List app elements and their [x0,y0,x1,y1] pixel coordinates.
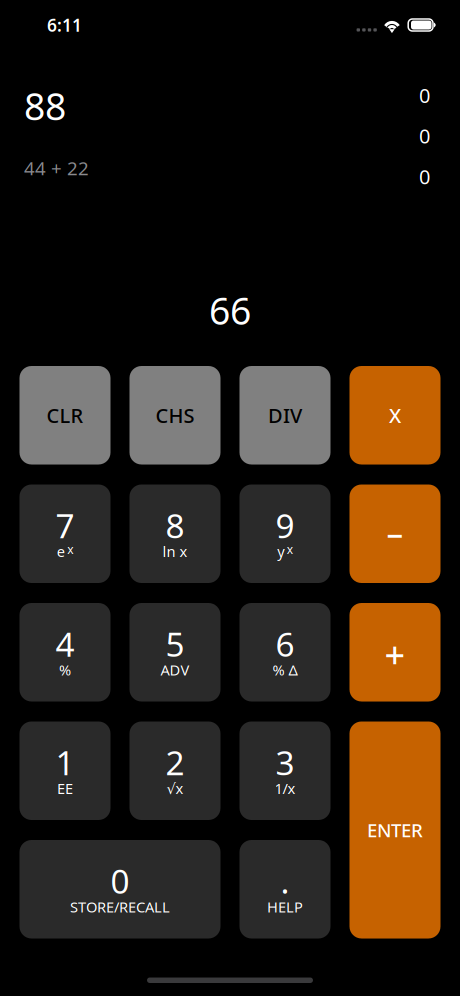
staticText: HELP [267,897,303,916]
button[interactable]: 2 [129,721,220,820]
staticText: √x [166,778,183,798]
staticText: ln x [162,541,187,561]
staticText: X [389,402,401,429]
staticText: + [384,630,405,678]
staticText: % Δ [272,660,297,679]
staticText: 88 [24,81,66,131]
staticText: 5 [165,622,184,666]
staticText: – [386,510,403,554]
staticText: . [280,859,289,903]
staticText: x [67,541,73,557]
staticText: e [57,541,65,561]
staticText: 0 [419,123,430,149]
staticText: 6:11 [47,13,82,36]
staticText: DIV [268,402,302,429]
button[interactable]: – [349,484,440,583]
button[interactable]: 4 [19,603,110,701]
button[interactable]: X [349,366,440,464]
button[interactable]: 3 [239,721,330,820]
staticText: ENTER [367,818,423,842]
staticText: 7 [55,503,74,547]
staticText: 8 [165,503,184,547]
button[interactable]: 6 [239,603,330,701]
staticText: 3 [275,740,294,784]
staticText: ADV [160,660,189,679]
button[interactable]: 7 [19,484,110,583]
button[interactable]: DIV [239,366,330,464]
button[interactable]: CLR [19,366,110,464]
staticText: 0 [419,163,430,190]
staticText: 44 + 22 [24,156,89,180]
staticText: STORE/RECALL [70,897,170,916]
staticText: 0 [419,82,430,109]
staticText: % [59,660,71,679]
button[interactable]: CHS [129,366,220,464]
staticText: CLR [46,402,83,429]
staticText: x [287,541,293,557]
staticText: CHS [155,402,194,429]
staticText: 66 [209,285,251,335]
staticText: 9 [275,503,294,547]
staticText: 6 [275,622,294,666]
button[interactable]: . [239,840,330,938]
staticText: EE [57,778,73,798]
staticText: 1 [55,740,74,784]
button[interactable]: + [349,603,440,701]
button[interactable]: 1 [19,721,110,820]
staticText: y [277,541,284,561]
staticText: 2 [165,740,184,784]
staticText: 0 [110,859,129,903]
staticText: 4 [55,622,74,666]
staticText: 1/x [274,778,295,798]
button[interactable]: 9 [239,484,330,583]
button[interactable]: 0 [19,840,220,938]
button[interactable]: 5 [129,603,220,701]
button[interactable]: 8 [129,484,220,583]
button[interactable]: ENTER [349,721,440,938]
